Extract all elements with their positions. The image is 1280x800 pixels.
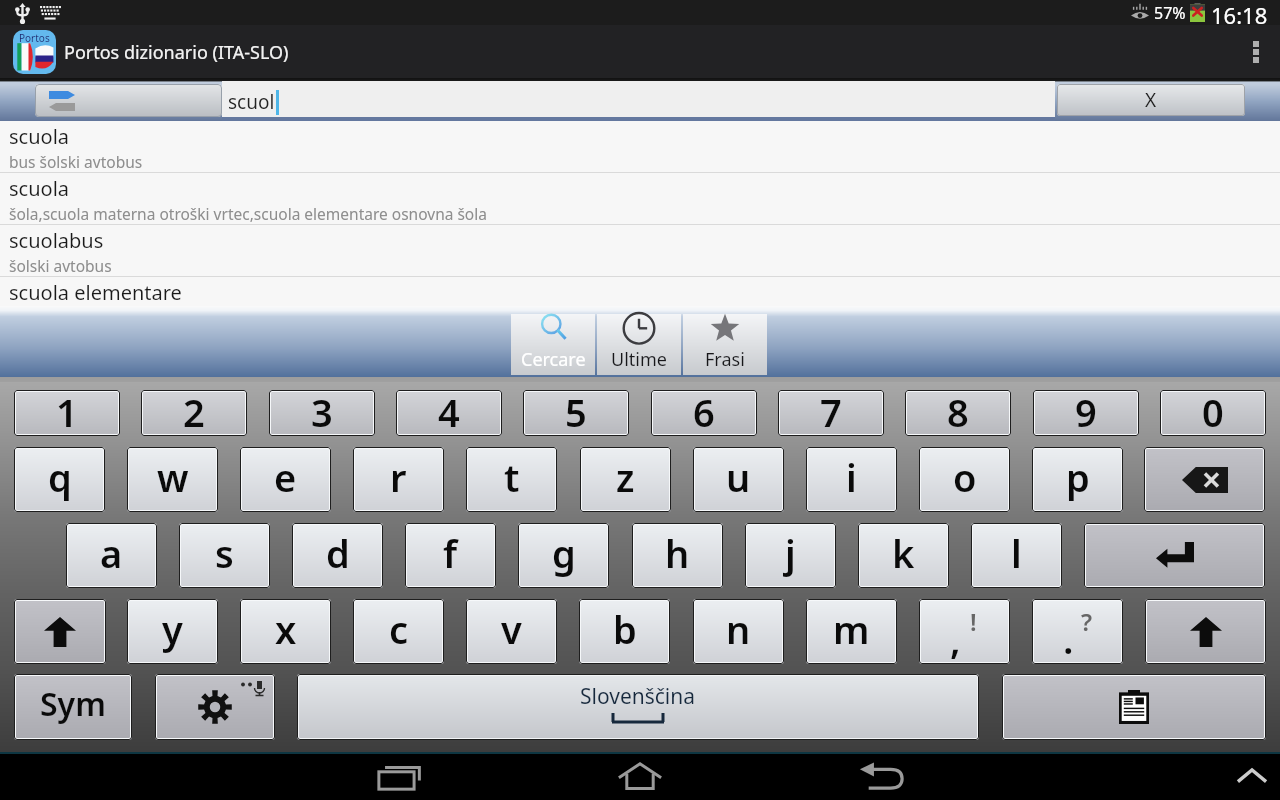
button[interactable]: l	[972, 524, 1061, 587]
staticText: 7	[820, 390, 842, 430]
button[interactable]: scuolabus	[0, 225, 1280, 276]
button[interactable]: z	[581, 448, 670, 511]
staticText: scuola	[9, 175, 70, 202]
staticText: y	[162, 603, 183, 655]
button[interactable]: r	[354, 448, 443, 511]
button[interactable]: b	[580, 600, 669, 663]
staticText: a	[100, 527, 123, 579]
button[interactable]: x	[241, 600, 330, 663]
button[interactable]: a	[67, 524, 156, 587]
staticText: 9	[1075, 390, 1097, 430]
button[interactable]: t	[467, 448, 556, 511]
staticText: w	[157, 451, 189, 503]
staticText: .	[1063, 613, 1074, 664]
button[interactable]: scuola	[0, 121, 1280, 172]
button[interactable]: 0	[1161, 391, 1265, 435]
staticText: i	[846, 451, 857, 503]
button[interactable]: u	[694, 448, 783, 511]
staticText: Portos	[19, 31, 50, 45]
button[interactable]: Shift	[15, 600, 105, 663]
button[interactable]: m	[807, 600, 896, 663]
button[interactable]: s	[180, 524, 269, 587]
staticText: b	[613, 603, 637, 655]
button[interactable]: scuola elementare	[0, 277, 1280, 306]
button[interactable]: 8	[906, 391, 1010, 435]
button[interactable]: Home	[610, 752, 670, 800]
staticText: 3	[311, 390, 333, 430]
button[interactable]: i	[807, 448, 896, 511]
staticText: šola,scuola materna otroški vrtec,scuola…	[9, 203, 487, 224]
staticText: !	[970, 605, 977, 638]
button[interactable]: Shift	[1146, 600, 1265, 663]
staticText: šolski avtobus	[9, 255, 112, 276]
staticText: Frasi	[705, 347, 745, 372]
staticText: j	[785, 527, 796, 579]
button[interactable]: k	[859, 524, 948, 587]
button[interactable]: 3	[270, 391, 374, 435]
button[interactable]: .	[1033, 600, 1122, 663]
button[interactable]: ,	[920, 600, 1009, 663]
button[interactable]: Enter	[1085, 524, 1264, 587]
staticText: o	[953, 451, 977, 503]
staticText: x	[275, 603, 297, 655]
button[interactable]: Recent apps	[370, 752, 430, 800]
button[interactable]: q	[15, 448, 104, 511]
button[interactable]: scuola	[0, 173, 1280, 224]
staticText: g	[552, 527, 576, 579]
button[interactable]: w	[128, 448, 217, 511]
button[interactable]: f	[406, 524, 495, 587]
staticText: scuolabus	[9, 227, 104, 254]
button[interactable]: 1	[15, 391, 119, 435]
staticText: p	[1066, 451, 1090, 503]
button[interactable]: Expand	[1222, 752, 1280, 800]
button[interactable]: v	[467, 600, 556, 663]
button[interactable]: 2	[142, 391, 246, 435]
button[interactable]: Ultime	[597, 314, 681, 375]
button[interactable]: 4	[397, 391, 501, 435]
staticText: Ultime	[611, 347, 667, 372]
staticText: 4	[438, 390, 460, 430]
button[interactable]: scuol	[222, 81, 1055, 121]
staticText: 1	[56, 390, 78, 430]
staticText: 8	[947, 390, 969, 430]
button[interactable]: h	[633, 524, 722, 587]
button[interactable]: Frasi	[683, 314, 767, 375]
staticText: n	[726, 603, 751, 655]
button[interactable]: Cercare	[511, 314, 595, 375]
button[interactable]: 5	[524, 391, 628, 435]
button[interactable]: Slovenščina	[298, 675, 978, 739]
button[interactable]: Sym	[15, 675, 131, 739]
staticText: Slovenščina	[580, 682, 696, 711]
staticText: scuol	[228, 89, 275, 115]
button[interactable]: y	[128, 600, 217, 663]
staticText: bus šolski avtobus	[9, 151, 143, 172]
button[interactable]: 6	[652, 391, 756, 435]
staticText: ,	[950, 613, 961, 664]
button[interactable]: Clipboard	[1003, 675, 1265, 739]
staticText: z	[616, 451, 635, 503]
button[interactable]: 7	[779, 391, 883, 435]
button[interactable]: j	[746, 524, 835, 587]
button[interactable]: o	[920, 448, 1009, 511]
staticText: d	[326, 527, 350, 579]
staticText: 16:18	[1211, 0, 1268, 25]
staticText: scuola elementare	[9, 279, 182, 306]
staticText: Portos dizionario (ITA-SLO)	[64, 40, 289, 65]
button[interactable]: c	[354, 600, 443, 663]
button[interactable]: d	[293, 524, 382, 587]
button[interactable]: X	[1057, 84, 1245, 116]
staticText: scuola	[9, 123, 70, 150]
button[interactable]: p	[1033, 448, 1122, 511]
staticText: 2	[183, 390, 205, 430]
button[interactable]: g	[519, 524, 608, 587]
button[interactable]: n	[694, 600, 783, 663]
button[interactable]: Back	[851, 752, 911, 800]
staticText: u	[726, 451, 751, 503]
button[interactable]: More options	[1232, 25, 1280, 78]
button[interactable]: e	[241, 448, 330, 511]
button[interactable]: 9	[1034, 391, 1138, 435]
button[interactable]: Swap languages	[35, 84, 222, 117]
button[interactable]: Backspace	[1145, 448, 1264, 511]
button[interactable]: Keyboard settings	[156, 675, 274, 739]
staticText: s	[215, 527, 234, 579]
